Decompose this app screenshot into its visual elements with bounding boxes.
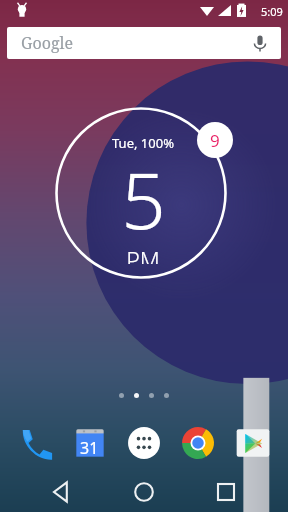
button[interactable]: Back — [42, 472, 82, 512]
button[interactable]: Calendar — [71, 424, 109, 462]
staticText: 5 — [121, 146, 166, 252]
staticText: 31 — [80, 437, 99, 459]
staticText: Tue, 100% — [112, 134, 174, 152]
button[interactable]: 9 notifications — [197, 122, 233, 158]
button[interactable]: Voice search — [249, 32, 271, 54]
button[interactable]: Recents — [206, 472, 246, 512]
button[interactable]: Play Store — [234, 424, 272, 462]
staticText: Google — [21, 32, 74, 54]
staticText: 9 — [210, 129, 220, 152]
staticText: 5:09 — [261, 4, 283, 19]
button[interactable]: Phone — [16, 424, 54, 462]
button[interactable]: Tue, 100% — [55, 102, 231, 278]
staticText: PM — [126, 244, 160, 264]
button[interactable]: Apps — [125, 424, 163, 462]
button[interactable]: Chrome — [179, 424, 217, 462]
button[interactable]: Google — [7, 27, 281, 59]
button[interactable]: Home — [124, 472, 164, 512]
